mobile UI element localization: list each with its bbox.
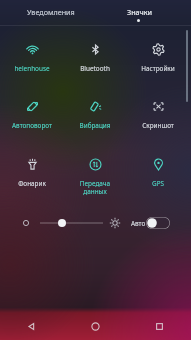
button[interactable]: helenhouse: [1, 35, 63, 73]
button[interactable]: Скриншот: [127, 92, 189, 130]
staticText: Вибрация: [64, 121, 126, 130]
button[interactable]: Настройки: [127, 35, 189, 73]
staticText: helenhouse: [1, 64, 63, 73]
button[interactable]: Автоповорот: [1, 92, 63, 130]
staticText: Авто: [131, 219, 146, 228]
button[interactable]: Bluetooth: [64, 35, 126, 73]
staticText: Значки: [127, 7, 153, 17]
button[interactable]: Back: [0, 313, 63, 340]
button[interactable]: Auto brightness: [146, 217, 170, 229]
staticText: Фонарик: [1, 179, 63, 188]
button[interactable]: Фонарик: [1, 150, 63, 188]
staticText: Передача данных: [64, 179, 126, 196]
button[interactable]: GPS: [127, 150, 189, 188]
button[interactable]: Recents: [127, 313, 191, 340]
button[interactable]: Home: [63, 313, 127, 340]
staticText: GPS: [127, 179, 189, 188]
staticText: Автоповорот: [1, 121, 63, 130]
staticText: Уведомления: [27, 7, 75, 17]
button[interactable]: Передача данных: [64, 150, 126, 188]
button[interactable]: Уведомления: [7, 0, 95, 24]
staticText: Настройки: [127, 64, 189, 73]
button[interactable]: Вибрация: [64, 92, 126, 130]
button[interactable]: Значки: [95, 0, 184, 24]
staticText: Bluetooth: [64, 64, 126, 73]
staticText: Скриншот: [127, 121, 189, 130]
